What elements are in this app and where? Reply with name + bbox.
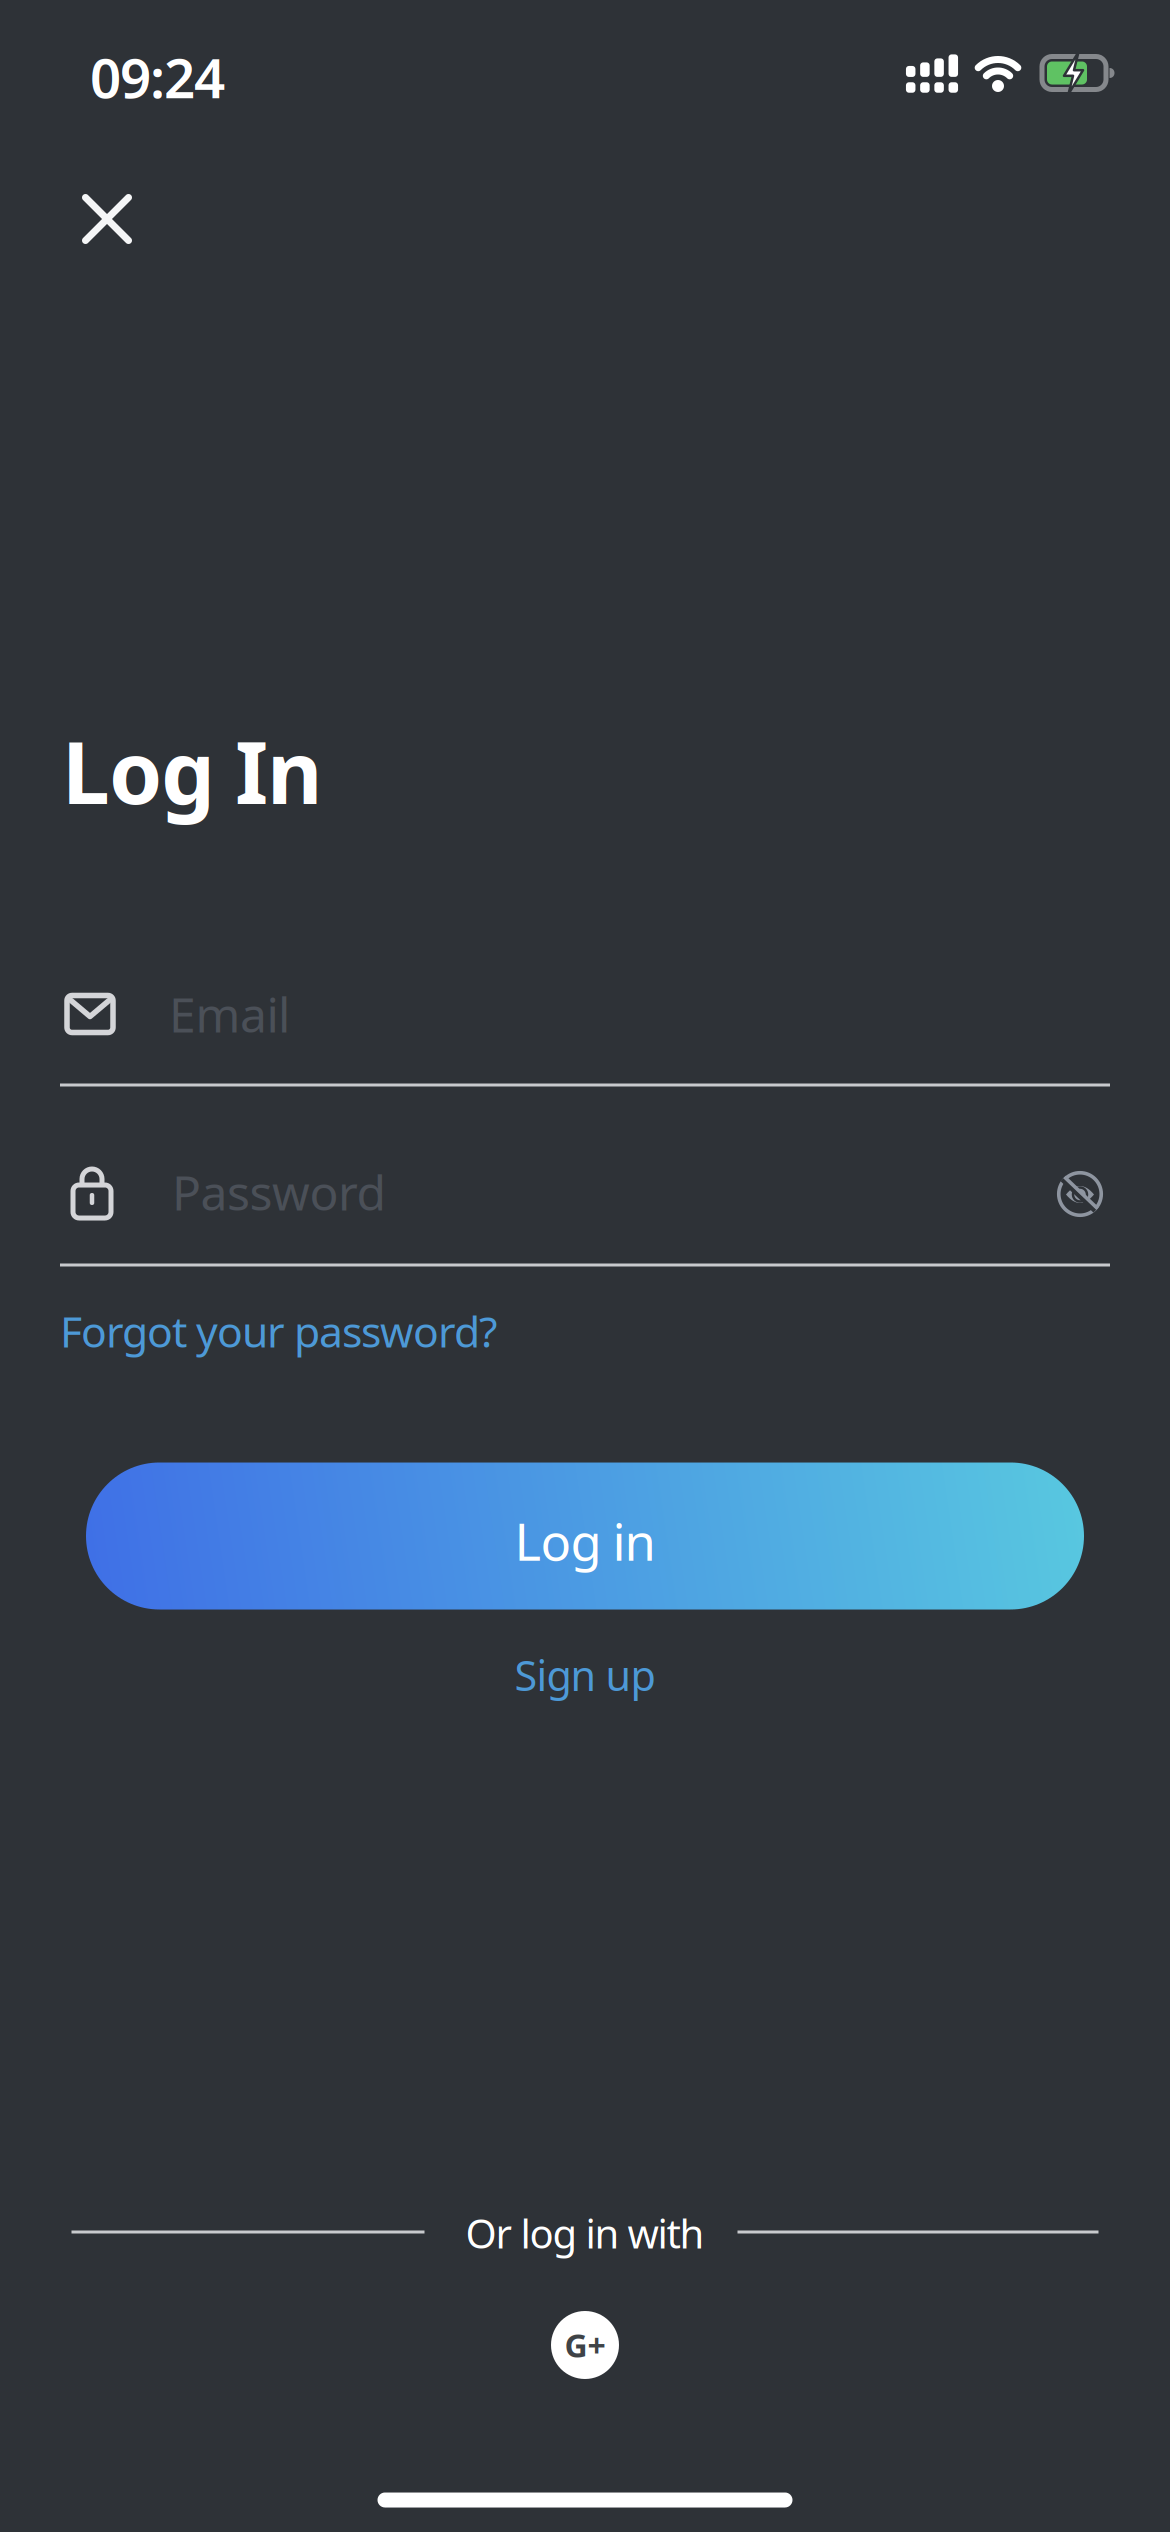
button[interactable]: Log in with Google — [551, 2311, 619, 2379]
staticText: Password — [172, 1160, 386, 1224]
staticText: Sign up — [514, 1648, 655, 1702]
button[interactable]: Close — [72, 184, 142, 254]
button[interactable]: Forgot your password? — [60, 1303, 498, 1359]
staticText: Log in — [514, 1507, 655, 1575]
button[interactable]: Show password — [1057, 1171, 1103, 1217]
staticText: 09:24 — [90, 41, 225, 113]
button[interactable]: Email — [67, 982, 1117, 1046]
button[interactable]: Sign up — [514, 1648, 655, 1702]
staticText: Or log in with — [465, 2206, 704, 2259]
staticText: Forgot your password? — [60, 1303, 498, 1359]
staticText: G+ — [564, 2324, 605, 2366]
staticText: Email — [169, 982, 290, 1046]
staticText: Log In — [62, 714, 322, 828]
button[interactable]: Password — [73, 1160, 993, 1224]
button[interactable]: Log in — [86, 1462, 1084, 1609]
